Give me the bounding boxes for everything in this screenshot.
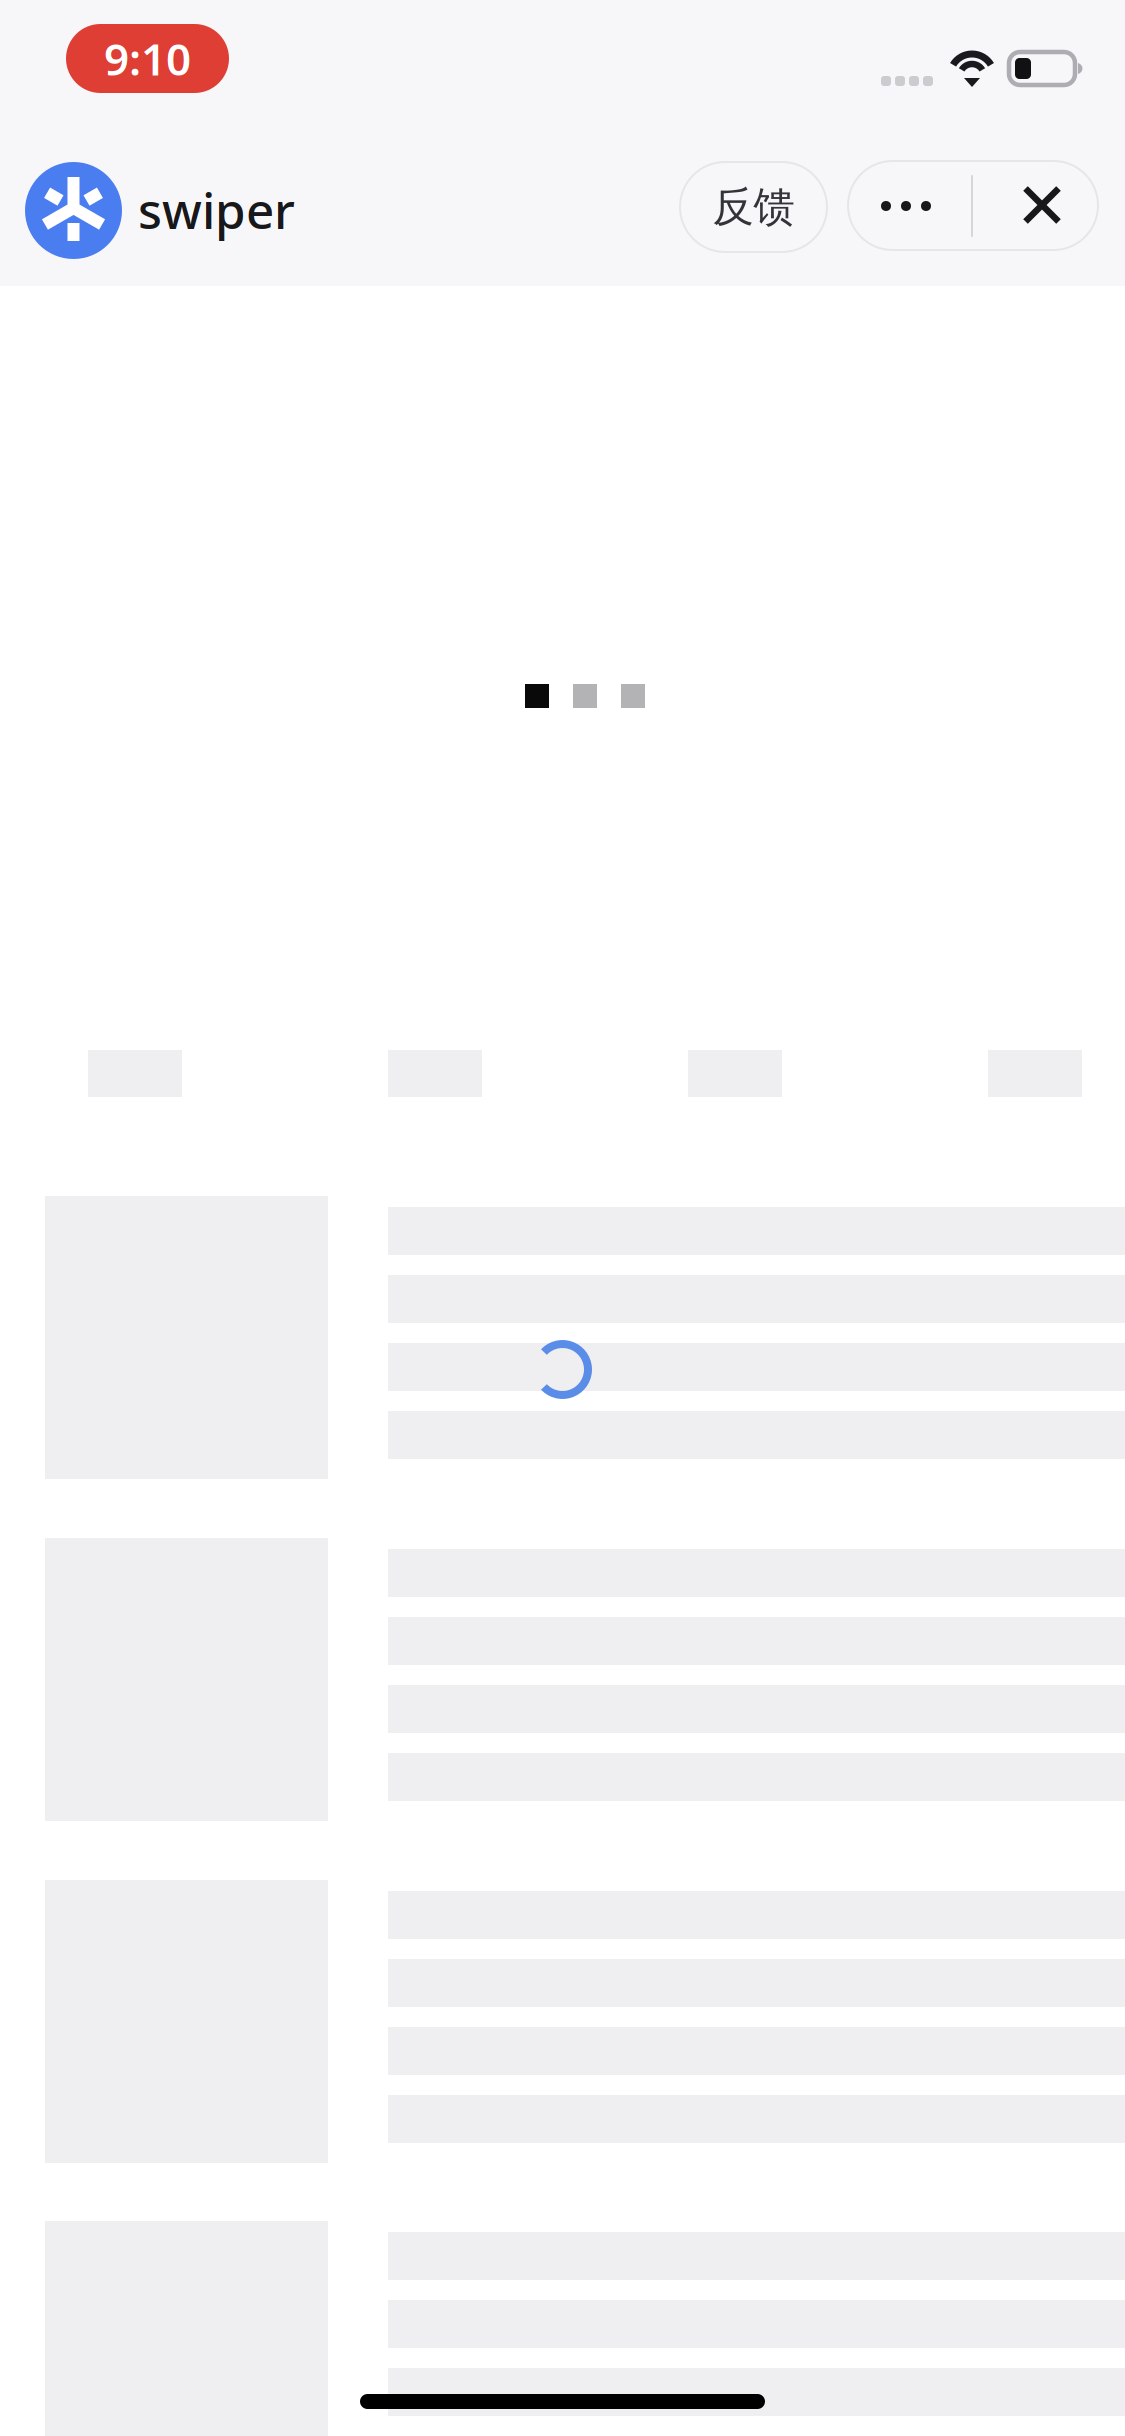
button[interactable]: More options and close bbox=[848, 161, 1098, 250]
staticText: 9:10 bbox=[104, 29, 191, 88]
staticText: swiper bbox=[138, 177, 295, 242]
button[interactable]: Loading item bbox=[0, 1196, 1125, 1479]
button[interactable]: Loading item bbox=[0, 1880, 1125, 2163]
button[interactable]: 反馈 bbox=[680, 162, 827, 252]
staticText: 反馈 bbox=[712, 182, 794, 232]
button[interactable]: Loading item bbox=[0, 2221, 1125, 2436]
button[interactable]: Loading item bbox=[0, 1538, 1125, 1821]
